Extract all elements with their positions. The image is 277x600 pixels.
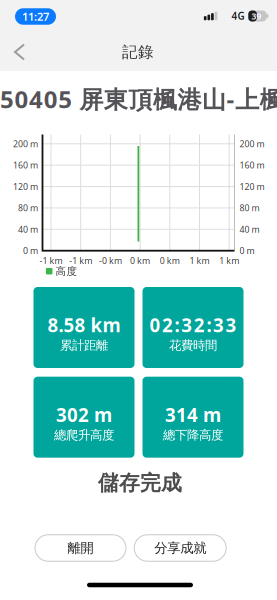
- button[interactable]: 離開: [35, 535, 126, 561]
- staticText: 80 m: [239, 202, 259, 214]
- staticText: 80 m: [18, 202, 38, 214]
- staticText: 39: [251, 10, 261, 22]
- staticText: 0 m: [23, 245, 38, 257]
- staticText: 儲存完成: [98, 470, 182, 496]
- staticText: 離開: [67, 540, 93, 556]
- staticText: 200 m: [239, 138, 264, 150]
- staticText: 11:27: [22, 9, 49, 24]
- staticText: 40 m: [18, 223, 38, 235]
- staticText: 40 m: [239, 223, 259, 235]
- staticText: 記錄: [122, 42, 154, 62]
- staticText: 302 m: [56, 402, 112, 427]
- staticText: -0 km: [99, 255, 122, 267]
- button[interactable]: 分享成就: [134, 535, 226, 561]
- staticText: 314 m: [165, 402, 221, 427]
- staticText: 0 km: [160, 255, 180, 267]
- staticText: 高度: [55, 265, 77, 278]
- staticText: 02:32:33: [149, 312, 237, 338]
- staticText: -1 km: [69, 255, 92, 267]
- staticText: 分享成就: [154, 540, 206, 556]
- staticText: 160 m: [239, 159, 264, 171]
- staticText: 0 m: [239, 245, 254, 257]
- staticText: 120 m: [239, 181, 264, 193]
- staticText: 160 m: [13, 159, 38, 171]
- staticText: 累計距離: [60, 337, 108, 353]
- staticText: 50405 屏東頂楓港山-上楓港山: [0, 83, 277, 115]
- button[interactable]: 返回: [4, 34, 34, 70]
- staticText: 總爬升高度: [54, 427, 114, 443]
- staticText: 1 km: [219, 255, 239, 267]
- staticText: 0 km: [130, 255, 150, 267]
- staticText: 花費時間: [169, 337, 217, 353]
- staticText: 200 m: [13, 138, 38, 150]
- staticText: 120 m: [13, 181, 38, 193]
- staticText: -1 km: [39, 255, 62, 267]
- staticText: 1 km: [189, 255, 209, 267]
- staticText: 4G: [231, 9, 244, 23]
- staticText: 8.58 km: [47, 312, 120, 338]
- staticText: 總下降高度: [163, 427, 223, 443]
